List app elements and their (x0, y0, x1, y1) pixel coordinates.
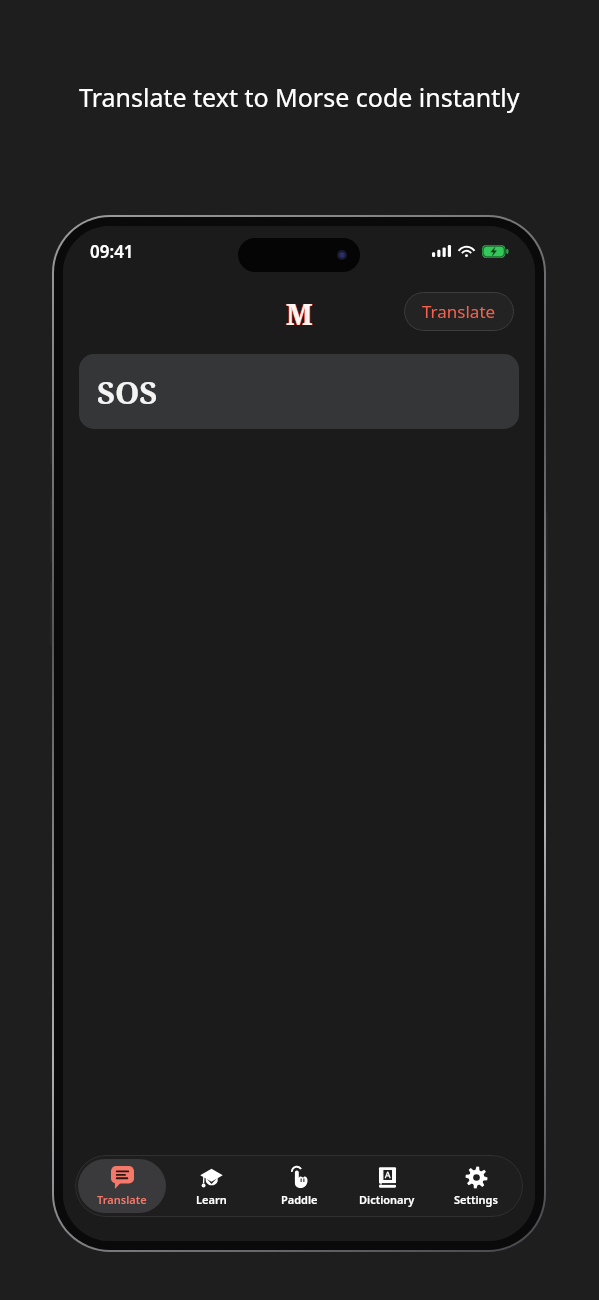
button[interactable]: Dictionary (343, 1159, 431, 1213)
button[interactable]: Translate (78, 1159, 166, 1213)
staticText: Translate (422, 300, 496, 323)
staticText: Translate (97, 1192, 147, 1207)
button[interactable]: SOS (79, 354, 519, 429)
button[interactable]: Settings (432, 1159, 520, 1213)
staticText: SOS (97, 371, 158, 413)
staticText: M (287, 295, 314, 327)
button[interactable]: Paddle (255, 1159, 343, 1213)
staticText: M (286, 295, 313, 327)
staticText: M (285, 295, 312, 327)
button[interactable]: Translate (404, 292, 514, 331)
staticText: Translate text to Morse code instantly (79, 80, 520, 114)
staticText: 09:41 (90, 240, 134, 263)
staticText: Learn (196, 1192, 227, 1207)
button[interactable]: Learn (167, 1159, 255, 1213)
staticText: Dictionary (359, 1192, 415, 1207)
staticText: Settings (454, 1192, 498, 1207)
staticText: Paddle (281, 1192, 318, 1207)
